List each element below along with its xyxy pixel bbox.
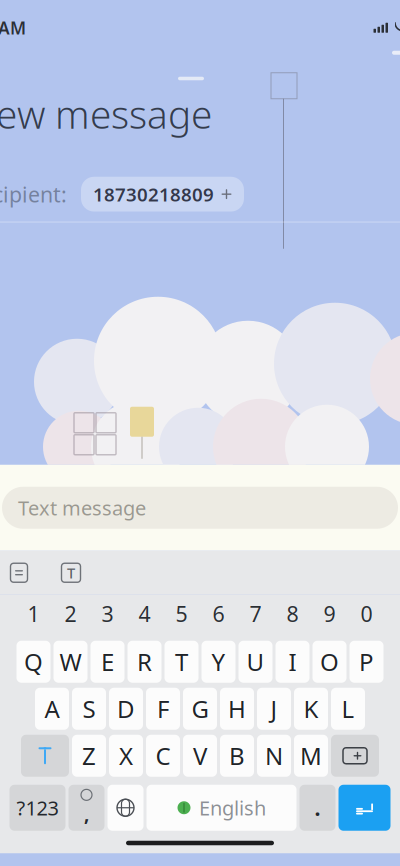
button[interactable]: J <box>257 688 291 730</box>
staticText: ?123 <box>16 794 58 821</box>
staticText: 2 <box>64 600 76 628</box>
button[interactable]: D <box>109 688 143 730</box>
button[interactable]: 3 <box>89 600 126 628</box>
staticText: T <box>175 646 188 678</box>
staticText: 7 <box>249 600 261 628</box>
staticText: Z <box>82 740 96 772</box>
staticText: H <box>228 693 246 725</box>
staticText: New message <box>0 88 212 139</box>
button[interactable]: Q <box>16 641 50 683</box>
staticText: E <box>101 646 114 678</box>
staticText: D <box>117 693 135 725</box>
staticText: Y <box>211 646 225 678</box>
staticText: V <box>193 740 207 772</box>
staticText: T <box>67 563 75 582</box>
staticText: K <box>303 693 318 725</box>
staticText: Q <box>24 646 43 678</box>
staticText: , <box>84 801 89 826</box>
button[interactable]: Emoji <box>68 785 104 831</box>
button[interactable]: 0 <box>348 600 385 628</box>
button[interactable]: Period <box>299 785 335 831</box>
staticText: 1 <box>27 600 39 628</box>
button[interactable]: A <box>35 688 69 730</box>
button[interactable]: O <box>312 641 346 683</box>
staticText: 6 <box>212 600 224 628</box>
button[interactable]: N <box>257 735 291 777</box>
button[interactable]: X <box>109 735 143 777</box>
staticText: A <box>44 693 59 725</box>
button[interactable]: English <box>146 785 296 831</box>
button[interactable]: Y <box>201 641 235 683</box>
button[interactable]: 9 <box>311 600 348 628</box>
button[interactable]: M <box>294 735 328 777</box>
button[interactable]: K <box>294 688 328 730</box>
button[interactable]: U <box>238 641 272 683</box>
button[interactable]: Text format <box>56 559 86 587</box>
button[interactable]: 4 <box>126 600 163 628</box>
button[interactable]: L <box>331 688 365 730</box>
button[interactable]: P <box>349 641 383 683</box>
button[interactable]: E <box>90 641 124 683</box>
staticText: P <box>359 646 374 678</box>
staticText: English <box>199 794 266 821</box>
staticText: G <box>191 693 208 725</box>
staticText: 3 <box>101 600 113 628</box>
button[interactable]: R <box>127 641 161 683</box>
staticText: 5 <box>175 600 187 628</box>
button[interactable]: 7 <box>237 600 274 628</box>
staticText: X <box>119 740 133 772</box>
staticText: 9 <box>323 600 335 628</box>
button[interactable]: 1 <box>15 600 52 628</box>
staticText: M <box>300 740 322 772</box>
button[interactable]: 5 <box>163 600 200 628</box>
button[interactable]: B <box>220 735 254 777</box>
button[interactable]: F <box>146 688 180 730</box>
staticText: 0 <box>360 600 372 628</box>
staticText: O <box>320 646 339 678</box>
staticText: Recipient: <box>0 180 67 208</box>
staticText: F <box>157 693 169 725</box>
button[interactable]: Z <box>72 735 106 777</box>
staticText: . <box>314 794 320 822</box>
staticText: L <box>341 693 354 725</box>
button[interactable]: Switch keyboard <box>107 785 143 831</box>
staticText: N <box>265 740 283 772</box>
button[interactable]: C <box>146 735 180 777</box>
button[interactable]: Return <box>338 785 390 831</box>
staticText: Text message <box>18 494 146 521</box>
button[interactable]: 18730218809 <box>81 177 244 212</box>
button[interactable]: H <box>220 688 254 730</box>
button[interactable]: Quick phrases <box>4 559 34 587</box>
staticText: C <box>155 740 170 772</box>
button[interactable]: 6 <box>200 600 237 628</box>
button[interactable]: Text message <box>2 487 398 529</box>
staticText: S <box>82 693 95 725</box>
button[interactable]: V <box>183 735 217 777</box>
staticText: W <box>59 646 81 678</box>
button[interactable]: I <box>275 641 309 683</box>
staticText: U <box>246 646 264 678</box>
button[interactable]: W <box>53 641 87 683</box>
button[interactable]: Shift <box>21 735 69 777</box>
button[interactable]: 8 <box>274 600 311 628</box>
staticText: 8 <box>286 600 298 628</box>
button[interactable]: G <box>183 688 217 730</box>
button[interactable]: 2 <box>52 600 89 628</box>
staticText: I <box>288 646 296 678</box>
button[interactable]: T <box>164 641 198 683</box>
button[interactable]: Delete <box>331 735 379 777</box>
staticText: 18730218809 <box>93 182 214 207</box>
staticText: 4 <box>138 600 150 628</box>
staticText: J <box>270 693 277 725</box>
staticText: B <box>229 740 245 772</box>
staticText: 2:36 AM <box>0 16 26 39</box>
button[interactable]: ?123 <box>9 785 65 831</box>
button[interactable]: S <box>72 688 106 730</box>
staticText: R <box>137 646 152 678</box>
